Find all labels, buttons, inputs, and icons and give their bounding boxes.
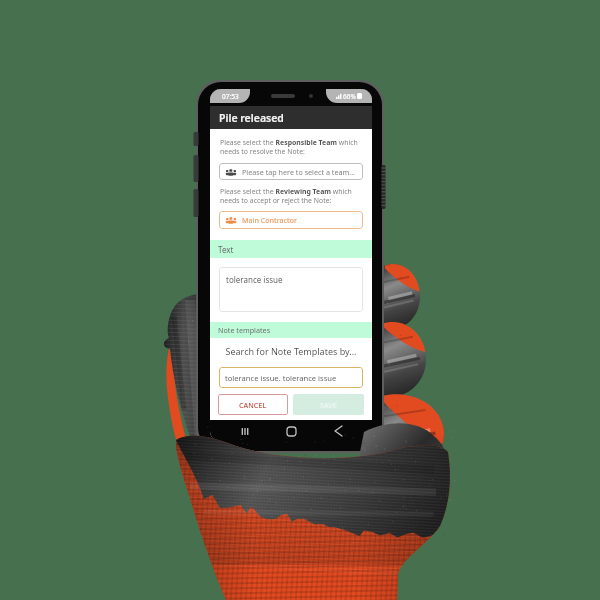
staticText: CANCEL	[239, 400, 267, 410]
staticText: Note templates	[218, 325, 271, 335]
staticText: Please select the Reviewing Team which n…	[220, 187, 352, 205]
button[interactable]: Pile released	[210, 106, 372, 129]
staticText: tolerance issue	[226, 274, 283, 285]
button[interactable]: Back	[325, 420, 351, 442]
staticText: 66%	[343, 92, 356, 101]
staticText: Text	[218, 244, 234, 255]
staticText: 07:53	[222, 92, 239, 101]
staticText: Pile released	[219, 111, 284, 125]
staticText: Search for Note Templates by...	[210, 345, 372, 357]
staticText: Please tap here to select a team...	[242, 167, 356, 177]
staticText: SAVE	[320, 400, 337, 410]
button[interactable]: Recents	[231, 420, 257, 442]
staticText: tolerance issue. tolerance issue	[225, 373, 337, 383]
button[interactable]: tolerance issue. tolerance issue	[219, 367, 363, 388]
button[interactable]: Main Contractor	[219, 211, 363, 229]
button[interactable]: CANCEL	[218, 394, 288, 415]
button[interactable]: tolerance issue	[219, 267, 363, 312]
staticText: Please select the Responsible Team which…	[220, 138, 358, 156]
staticText: Main Contractor	[242, 215, 297, 225]
button[interactable]: Home	[278, 420, 304, 442]
button[interactable]: Please tap here to select a team...	[219, 163, 363, 180]
button[interactable]: SAVE	[293, 394, 364, 415]
